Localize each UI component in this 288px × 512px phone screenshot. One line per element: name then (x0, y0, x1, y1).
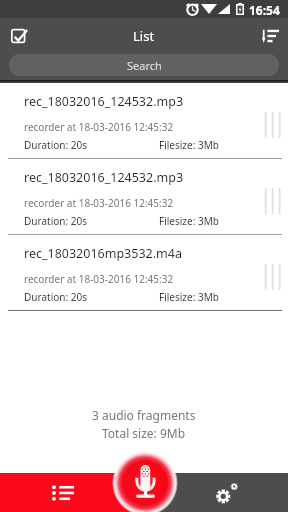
staticText: Filesize: 3Mb (159, 290, 219, 304)
button[interactable]: Record (112, 450, 178, 512)
staticText: recorder at 18-03-2016 12:45:32 (24, 272, 174, 286)
button[interactable]: Settings (144, 473, 288, 512)
button[interactable]: Recordings list (0, 473, 144, 512)
staticText: recorder at 18-03-2016 12:45:32 (24, 196, 174, 210)
staticText: Total size: 9Mb (102, 425, 186, 441)
staticText: rec_18032016mp3532.m4a (24, 245, 182, 262)
staticText: Duration: 20s (24, 138, 87, 152)
staticText: Duration: 20s (24, 290, 87, 304)
button[interactable]: Sort (256, 22, 284, 50)
button[interactable]: Search (9, 54, 279, 76)
staticText: Filesize: 3Mb (159, 138, 219, 152)
staticText: rec_18032016_124532.mp3 (24, 93, 184, 110)
staticText: recorder at 18-03-2016 12:45:32 (24, 120, 174, 134)
staticText: 3 audio fragments (92, 407, 196, 423)
staticText: Search (127, 58, 162, 73)
staticText: List (133, 27, 155, 45)
staticText: Filesize: 3Mb (159, 214, 219, 228)
staticText: rec_18032016_124532.mp3 (24, 169, 184, 186)
button[interactable]: rec_18032016mp3532.m4a (0, 235, 288, 311)
staticText: 16:54 (249, 2, 280, 18)
button[interactable]: rec_18032016_124532.mp3 (0, 83, 288, 159)
staticText: Duration: 20s (24, 214, 87, 228)
button[interactable]: Select all (5, 22, 33, 50)
button[interactable]: rec_18032016_124532.mp3 (0, 159, 288, 235)
